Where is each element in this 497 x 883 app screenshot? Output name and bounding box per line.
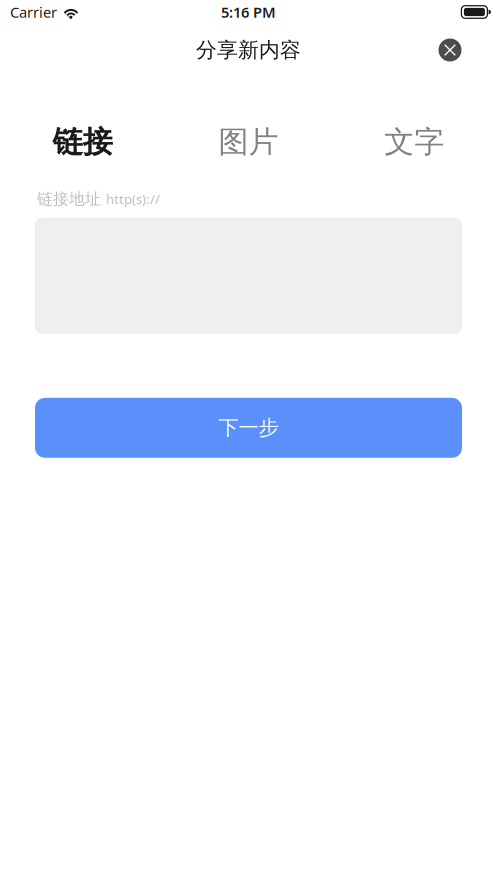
button[interactable]: Close [433, 33, 467, 67]
button[interactable]: 图片 [166, 123, 331, 161]
staticText: 文字 [384, 123, 444, 161]
button[interactable]: 下一步 [35, 398, 462, 458]
staticText: 5:16 PM [221, 2, 276, 22]
staticText: 图片 [218, 123, 278, 161]
staticText: 链接 [53, 123, 113, 161]
button[interactable]: 链接 [0, 123, 166, 161]
staticText: 分享新内容 [196, 37, 301, 63]
button[interactable]: 文字 [331, 123, 497, 161]
staticText: Carrier [10, 2, 57, 22]
staticText: 链接地址 [37, 189, 101, 209]
staticText: 下一步 [218, 415, 278, 441]
staticText: http(s):// [106, 190, 160, 208]
